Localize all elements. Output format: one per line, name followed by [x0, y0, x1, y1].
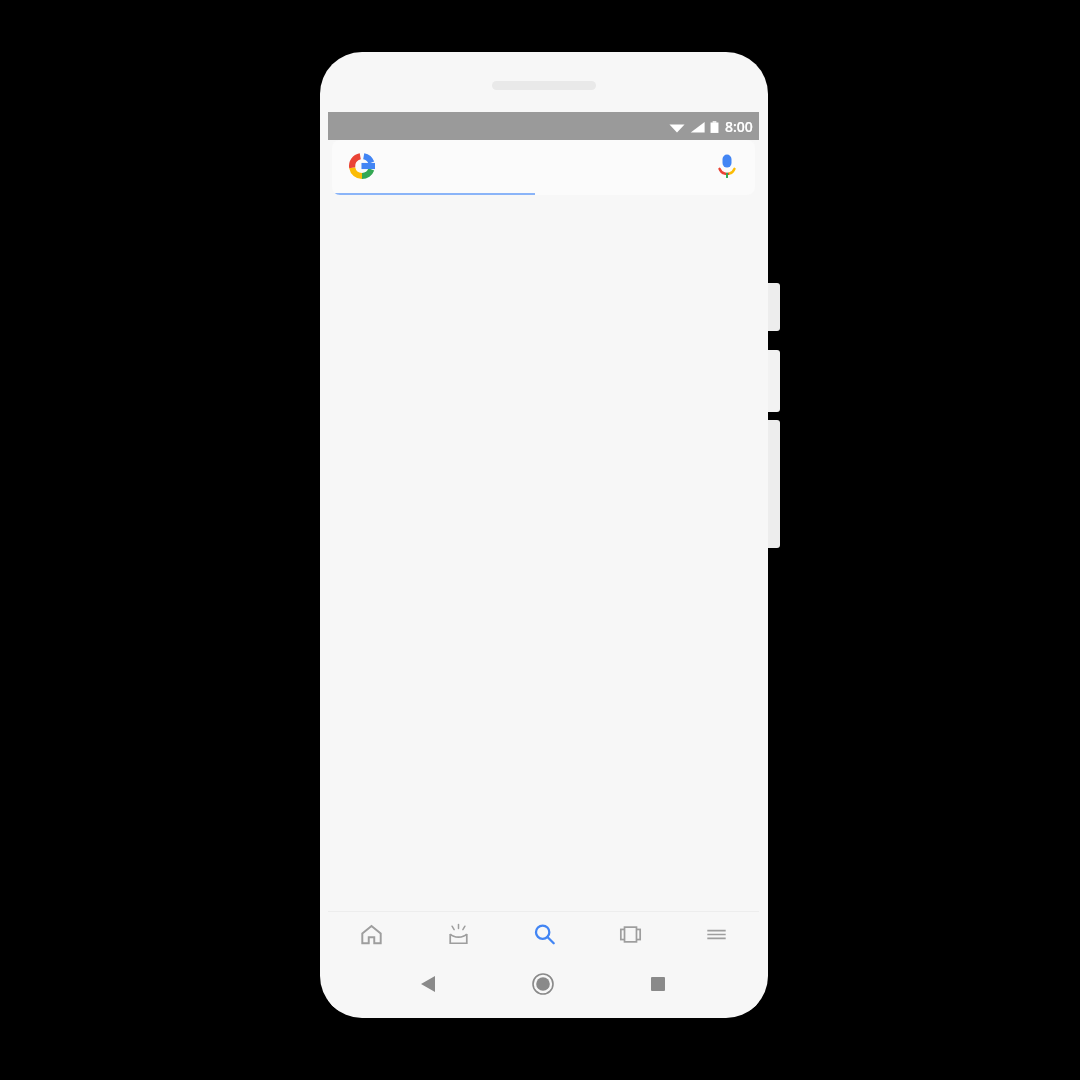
button[interactable]: Home — [497, 964, 589, 1004]
button[interactable]: Google — [332, 140, 755, 195]
button[interactable]: More — [673, 912, 759, 956]
staticText: 8:00 — [725, 117, 753, 136]
other: Google — [349, 153, 375, 179]
button[interactable]: Back — [382, 964, 474, 1004]
button[interactable]: Search — [501, 912, 587, 956]
button[interactable]: Recent apps — [612, 964, 704, 1004]
button[interactable]: Updates — [415, 912, 501, 956]
button[interactable]: Home — [328, 912, 415, 956]
button[interactable]: Voice search — [717, 153, 737, 179]
button[interactable]: Collections — [587, 912, 673, 956]
